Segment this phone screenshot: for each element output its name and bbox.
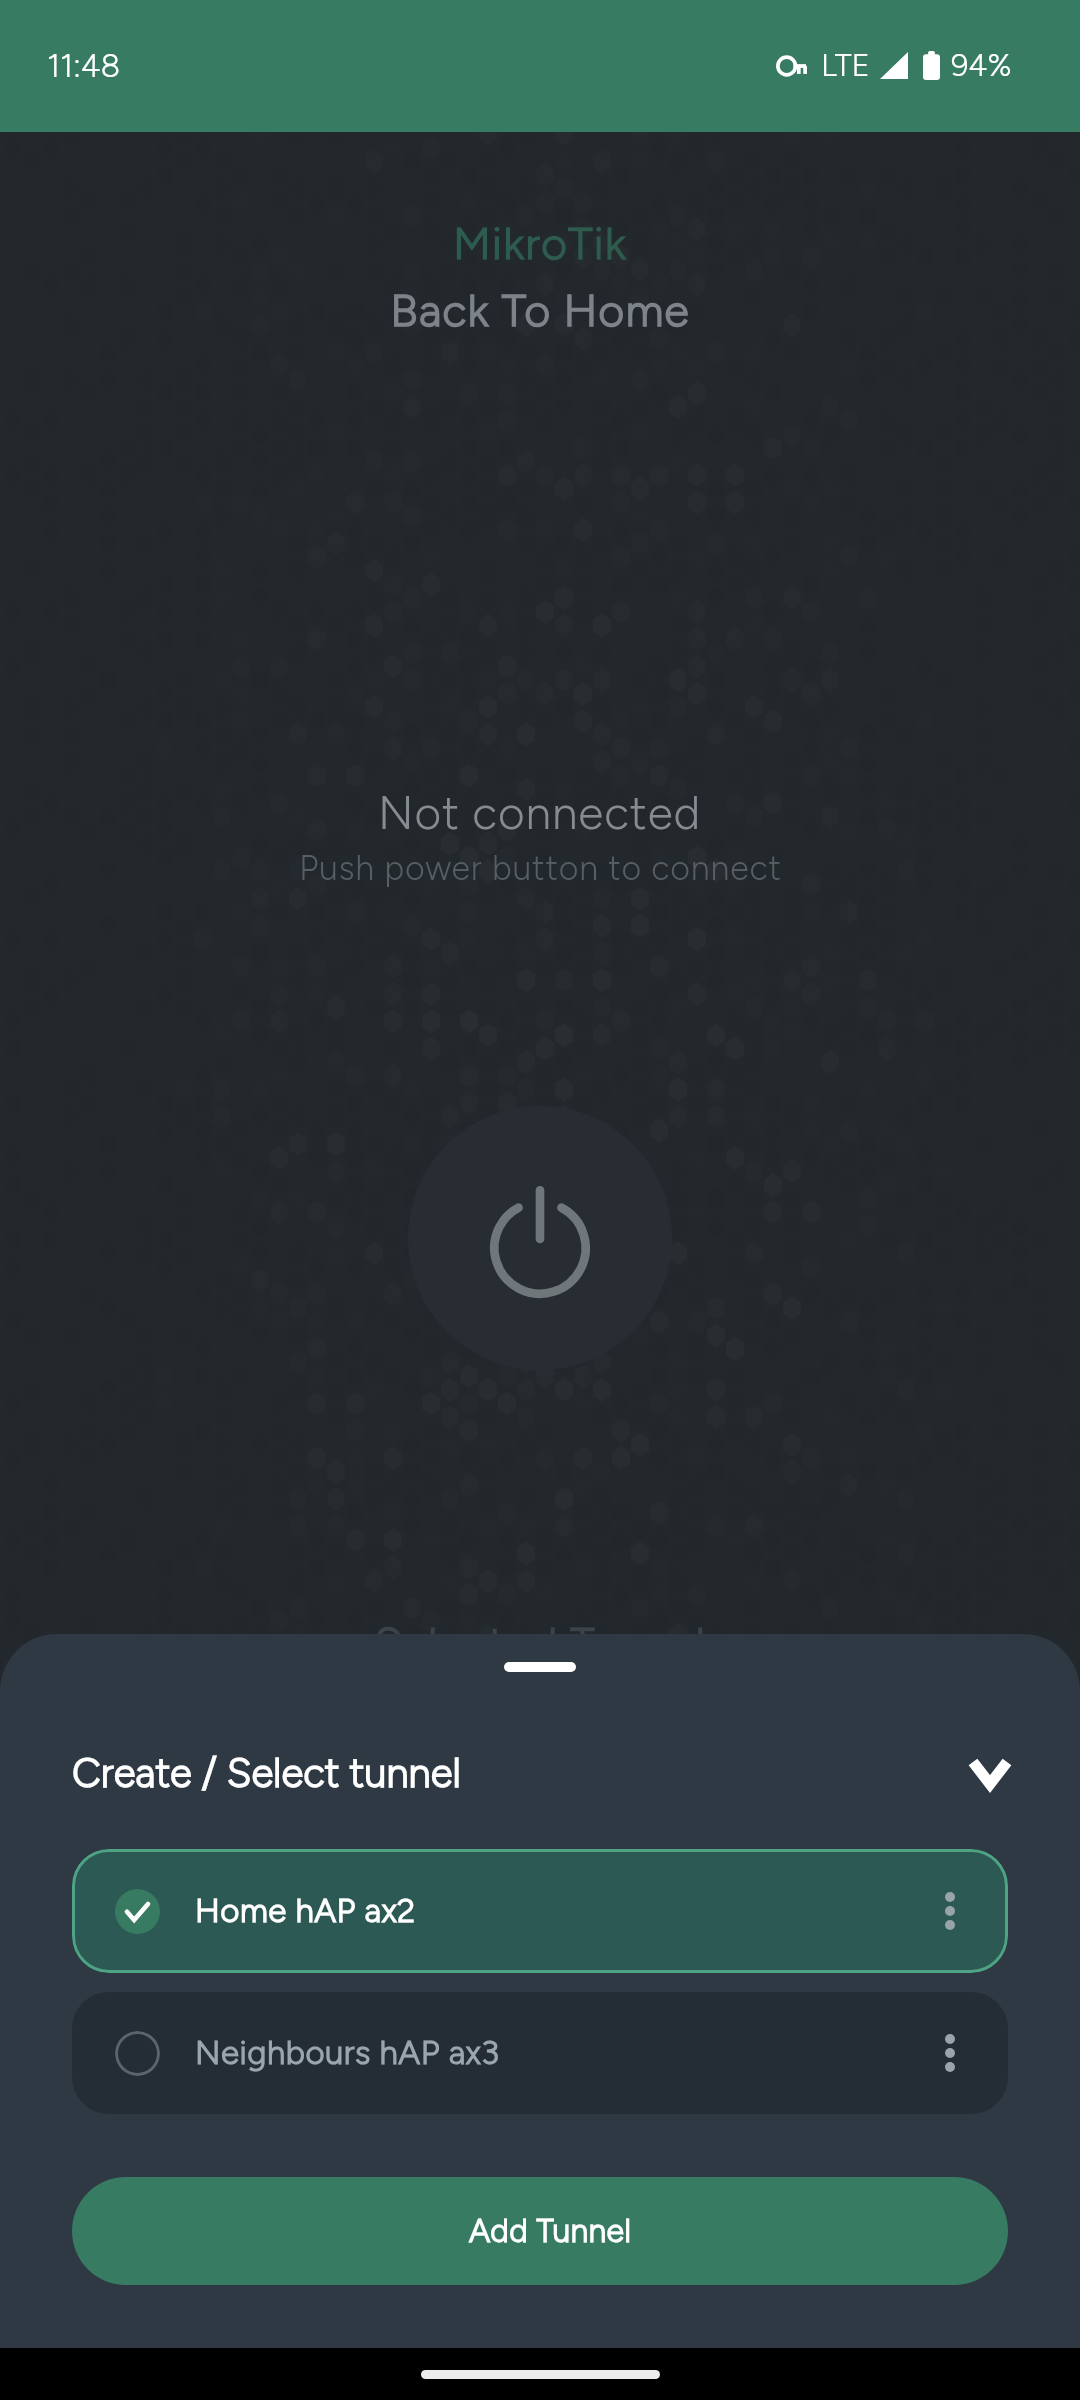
staticText: 11:48	[47, 47, 121, 85]
button[interactable]: Home hAP ax2	[72, 1849, 1008, 1973]
staticText: Home hAP ax2	[195, 1891, 416, 1931]
staticText: 94%	[951, 47, 1012, 84]
staticText: MikroTik	[453, 216, 627, 270]
staticText: Add Tunnel	[469, 2212, 632, 2250]
staticText: Push power button to connect	[299, 848, 782, 889]
button[interactable]: Collapse	[950, 1733, 1030, 1813]
staticText: Create / Select tunnel	[72, 1749, 461, 1797]
staticText: Neighbours hAP ax3	[195, 2033, 500, 2073]
button[interactable]: Power	[408, 1106, 672, 1370]
staticText: Selected Tunnel	[374, 1616, 706, 1670]
staticText: LTE	[821, 47, 870, 84]
button[interactable]: Neighbours hAP ax3	[72, 1992, 1008, 2114]
button[interactable]: More options	[920, 1881, 980, 1941]
staticText: Back To Home	[390, 283, 690, 337]
button[interactable]: Add Tunnel	[72, 2177, 1008, 2285]
button[interactable]: More options	[920, 2023, 980, 2083]
staticText: Not connected	[378, 785, 702, 840]
